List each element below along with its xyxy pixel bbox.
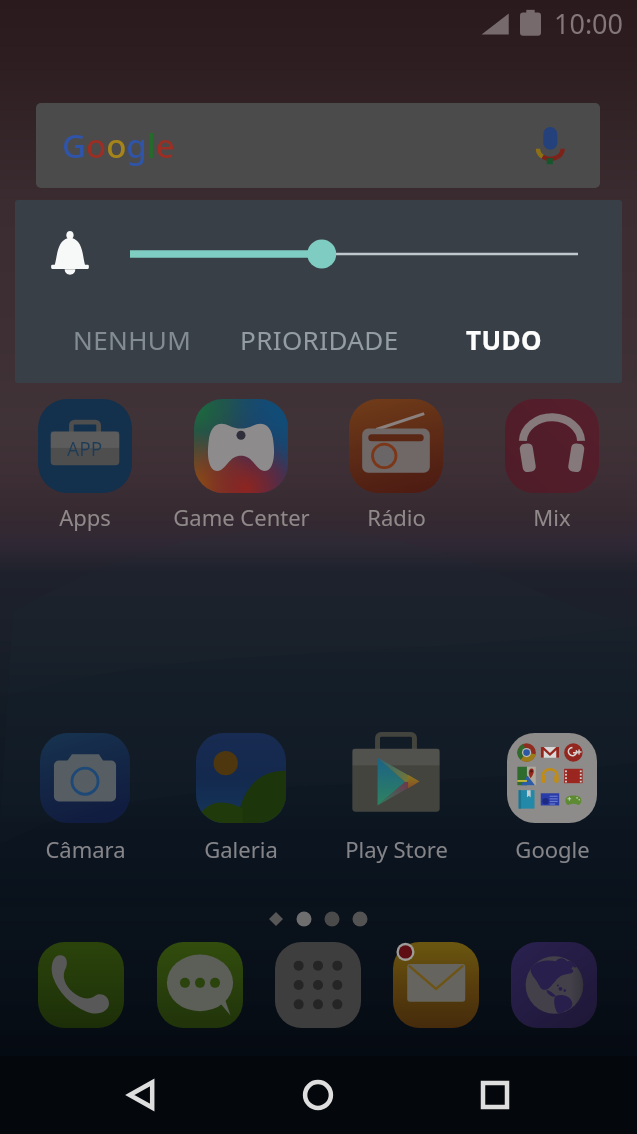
button[interactable]: Câmara: [8, 725, 162, 875]
button[interactable]: Play Store: [319, 725, 473, 875]
button[interactable]: Email: [393, 942, 479, 1028]
staticText: Play Store: [345, 834, 448, 864]
button[interactable]: [123, 236, 585, 272]
staticText: Game Center: [173, 502, 310, 532]
staticText: 10:00: [554, 5, 624, 42]
button[interactable]: Rádio: [319, 391, 473, 541]
staticText: TUDO: [466, 322, 542, 357]
staticText: Câmara: [45, 834, 126, 864]
button[interactable]: Recent apps: [463, 1056, 527, 1134]
staticText: Mix: [533, 502, 571, 532]
staticText: APP: [67, 436, 103, 462]
button[interactable]: Voice search: [524, 120, 576, 172]
staticText: Apps: [59, 502, 111, 532]
button[interactable]: Back: [110, 1056, 174, 1134]
staticText: Google: [62, 123, 175, 168]
button[interactable]: All apps: [275, 942, 361, 1028]
button[interactable]: Home: [286, 1056, 350, 1134]
button[interactable]: Messages: [157, 942, 243, 1028]
button[interactable]: Galeria: [164, 725, 318, 875]
staticText: Rádio: [367, 502, 426, 532]
button[interactable]: NENHUM: [63, 310, 201, 368]
staticText: PRIORIDADE: [240, 322, 399, 357]
button[interactable]: Game Center: [164, 391, 318, 541]
button[interactable]: Google: [36, 103, 600, 188]
button[interactable]: Phone: [38, 942, 124, 1028]
staticText: NENHUM: [73, 322, 192, 357]
button[interactable]: Mix: [475, 391, 629, 541]
staticText: Google: [515, 834, 590, 864]
button[interactable]: APP: [8, 391, 162, 541]
button[interactable]: Google: [475, 725, 629, 875]
staticText: Galeria: [204, 834, 278, 864]
button[interactable]: PRIORIDADE: [233, 310, 405, 368]
button[interactable]: TUDO: [453, 310, 555, 368]
button[interactable]: Browser: [511, 942, 597, 1028]
button[interactable]: Notification mode: [47, 230, 93, 280]
